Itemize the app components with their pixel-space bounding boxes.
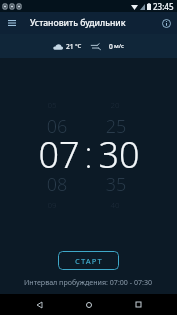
button[interactable]: 21 (53, 42, 125, 51)
button[interactable]: Recent apps (127, 294, 149, 315)
staticText: м/с (114, 42, 125, 50)
staticText: Интервал пробуждения: 07:00 - 07:30 (24, 277, 153, 287)
button[interactable]: Back (28, 294, 50, 315)
button[interactable]: Home (78, 294, 100, 315)
button[interactable] (93, 88, 145, 221)
staticText: 25 (90, 114, 142, 139)
staticText: 08 (31, 172, 83, 197)
button[interactable]: Open navigation menu (0, 12, 23, 34)
button[interactable]: Information (155, 12, 177, 34)
button[interactable] (33, 88, 85, 221)
staticText: 21 (66, 42, 74, 51)
staticText: СТАРТ (75, 256, 103, 266)
staticText: 23:45 (153, 1, 174, 12)
staticText: 0 (109, 42, 113, 51)
staticText: 30 (93, 130, 145, 179)
staticText: Установить будильник (30, 17, 126, 29)
button[interactable]: СТАРТ (58, 251, 119, 270)
staticText: °C (75, 42, 82, 50)
staticText: 35 (90, 172, 142, 197)
staticText: 06 (31, 114, 83, 139)
staticText: 07 (33, 130, 85, 179)
